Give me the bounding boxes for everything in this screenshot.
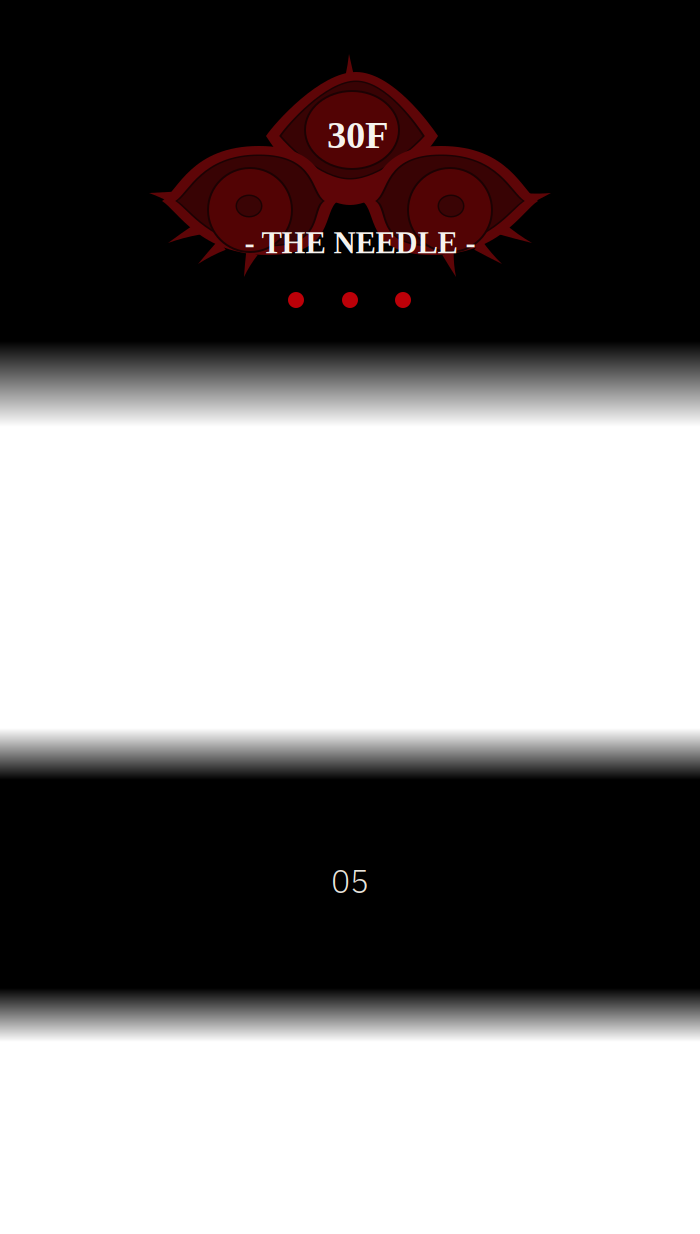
staticText: - THE NEEDLE -	[244, 226, 475, 260]
staticText: 30F	[327, 114, 389, 156]
staticText: 05	[331, 860, 369, 902]
